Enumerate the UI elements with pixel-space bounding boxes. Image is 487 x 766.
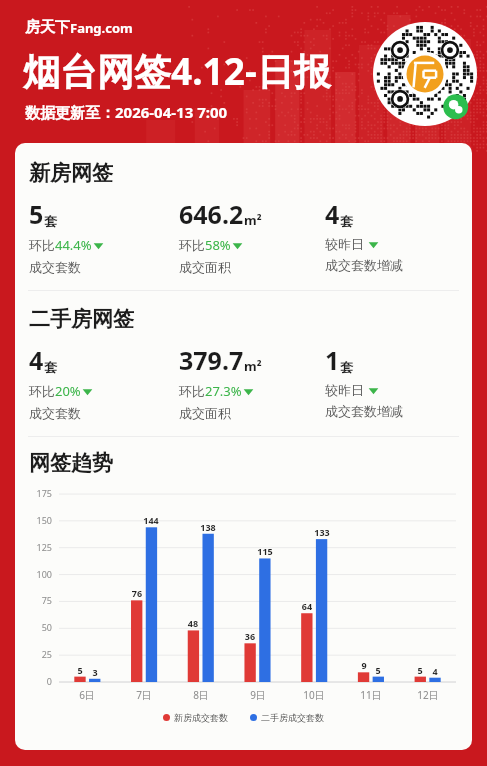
staticText: 环比 — [179, 237, 205, 253]
staticText: 138 — [194, 521, 222, 533]
staticText: 二手房网签 — [29, 306, 134, 332]
staticText: 环比 — [29, 237, 55, 253]
staticText: 套 — [340, 359, 353, 375]
staticText: 646.2 — [179, 197, 244, 231]
staticText: 4 — [29, 343, 44, 377]
staticText: 较昨日 — [325, 236, 364, 252]
staticText: 75 — [19, 594, 52, 606]
button[interactable]: 1 — [325, 343, 466, 419]
staticText: 100 — [19, 568, 52, 580]
staticText: 10日 — [294, 688, 334, 702]
staticText: 4 — [325, 197, 340, 231]
staticText: 64 — [293, 600, 321, 612]
staticText: 4 — [421, 665, 449, 677]
staticText: 11日 — [351, 688, 391, 702]
button[interactable]: 微信扫码二维码 — [373, 22, 477, 126]
staticText: 9 — [350, 659, 378, 671]
staticText: 27.3% — [205, 382, 242, 400]
staticText: 套 — [44, 213, 57, 229]
button[interactable]: 5 — [29, 197, 179, 275]
staticText: 较昨日 — [325, 382, 364, 398]
staticText: Fang.com — [70, 19, 133, 37]
staticText: 379.7 — [179, 343, 244, 377]
staticText: 网签趋势 — [29, 450, 113, 476]
staticText: 成交套数 — [29, 405, 81, 421]
staticText: 9日 — [238, 688, 278, 702]
staticText: 环比 — [29, 383, 55, 399]
staticText: 20% — [55, 382, 81, 400]
button[interactable]: 4 — [29, 343, 179, 421]
staticText: 3 — [81, 666, 109, 678]
staticText: 成交套数 — [29, 259, 81, 275]
staticText: 数据更新至：2026-04-13 7:00 — [25, 102, 228, 122]
staticText: 房天下 — [25, 18, 70, 37]
staticText: 48 — [179, 617, 207, 629]
staticText: 成交面积 — [179, 259, 231, 275]
staticText: 套 — [44, 359, 57, 375]
button[interactable]: 379.7 — [179, 343, 325, 421]
button[interactable]: 4 — [325, 197, 466, 273]
staticText: 58% — [205, 236, 231, 254]
staticText: 8日 — [181, 688, 221, 702]
staticText: 成交套数增减 — [325, 403, 403, 419]
staticText: 成交套数增减 — [325, 257, 403, 273]
staticText: m² — [244, 357, 262, 375]
staticText: 44.4% — [55, 236, 92, 254]
staticText: 125 — [19, 541, 52, 553]
staticText: 二手房成交套数 — [261, 712, 324, 723]
button[interactable]: 新房成交套数 — [163, 712, 228, 723]
button[interactable]: 646.2 — [179, 197, 325, 275]
staticText: 烟台网签4.12-日报 — [23, 45, 331, 96]
staticText: 175 — [19, 487, 52, 499]
staticText: 5 — [364, 664, 392, 676]
staticText: 6日 — [67, 688, 107, 702]
staticText: 12日 — [408, 688, 448, 702]
staticText: 50 — [19, 621, 52, 633]
staticText: 新房成交套数 — [174, 712, 228, 723]
staticText: 新房网签 — [29, 160, 113, 186]
staticText: 5 — [406, 664, 434, 676]
staticText: m² — [244, 211, 262, 229]
staticText: 150 — [19, 514, 52, 526]
staticText: 133 — [308, 526, 336, 538]
staticText: 115 — [251, 545, 279, 557]
staticText: 1 — [325, 343, 340, 377]
staticText: 144 — [137, 514, 165, 526]
button[interactable]: 二手房成交套数 — [250, 712, 324, 723]
staticText: 套 — [340, 213, 353, 229]
staticText: 5 — [66, 664, 94, 676]
staticText: 成交面积 — [179, 405, 231, 421]
staticText: 0 — [19, 675, 52, 687]
staticText: 36 — [236, 630, 264, 642]
staticText: 5 — [29, 197, 44, 231]
staticText: 环比 — [179, 383, 205, 399]
staticText: 7日 — [124, 688, 164, 702]
staticText: 25 — [19, 648, 52, 660]
staticText: 76 — [123, 587, 151, 599]
